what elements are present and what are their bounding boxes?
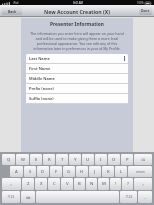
button[interactable]: Hide keyboard	[138, 191, 152, 203]
button[interactable]: G	[63, 166, 75, 177]
staticText: Prefix (none)	[29, 86, 54, 91]
button[interactable]: Q	[2, 154, 15, 165]
staticText: X	[40, 181, 43, 187]
staticText: P	[126, 157, 129, 163]
staticText: A	[15, 169, 18, 175]
button[interactable]: Prefix (none)	[26, 84, 128, 94]
button[interactable]: D	[37, 166, 49, 177]
button[interactable]: U	[82, 154, 94, 165]
button[interactable]: O	[108, 154, 120, 165]
staticText: N	[90, 181, 94, 187]
staticText: !	[115, 181, 117, 187]
button[interactable]: M	[98, 178, 109, 190]
staticText: .?123	[125, 195, 133, 199]
staticText: C	[53, 181, 56, 187]
button[interactable]: Numbers right	[120, 191, 137, 203]
button[interactable]: N	[86, 178, 97, 190]
staticText: M	[102, 181, 106, 187]
staticText: 9:41 AM	[73, 1, 83, 5]
staticText: D	[41, 169, 45, 175]
button[interactable]: K	[102, 166, 114, 177]
staticText: Middle Name	[29, 76, 55, 81]
button[interactable]: Shift right	[134, 178, 152, 190]
button[interactable]: !	[110, 178, 121, 190]
staticText: First Name	[29, 66, 51, 71]
button[interactable]: H	[76, 166, 88, 177]
staticText: ⇧	[142, 183, 145, 186]
button[interactable]: Delete	[134, 154, 152, 165]
staticText: New Account Creation (X)	[44, 8, 111, 15]
staticText: H	[80, 169, 84, 175]
staticText: U	[86, 157, 90, 163]
button[interactable]: L	[115, 166, 127, 177]
button[interactable]: E	[30, 154, 42, 165]
staticText: 100%	[137, 1, 144, 5]
button[interactable]: Keyboard	[21, 191, 35, 203]
staticText: V	[66, 181, 69, 187]
staticText: Presenter Information	[50, 21, 104, 28]
button[interactable]: First Name	[26, 64, 128, 74]
button[interactable]: X	[35, 178, 47, 190]
button[interactable]: ?	[122, 178, 133, 190]
button[interactable]: R	[43, 154, 55, 165]
button[interactable]: Z	[22, 178, 34, 190]
button[interactable]: Return	[128, 166, 152, 177]
button[interactable]: Shift	[2, 178, 21, 190]
staticText: O	[112, 157, 116, 163]
staticText: ⌨	[26, 196, 31, 199]
button[interactable]: Y	[69, 154, 81, 165]
staticText: F	[55, 169, 58, 175]
staticText: R	[48, 157, 51, 163]
staticText: The information you enter here will appe…	[27, 31, 127, 51]
staticText: Suffix (none)	[29, 96, 54, 101]
staticText: .?123	[7, 195, 15, 199]
staticText: ⌄	[144, 196, 147, 199]
staticText: Y	[74, 157, 77, 163]
button[interactable]: P	[121, 154, 133, 165]
button[interactable]: V	[61, 178, 73, 190]
staticText: I	[100, 157, 102, 163]
button[interactable]: Done	[139, 7, 152, 15]
button[interactable]: Last Name	[26, 54, 128, 64]
staticText: L	[120, 169, 123, 175]
button[interactable]: Space	[36, 191, 119, 203]
button[interactable]: W	[16, 154, 29, 165]
staticText: T	[61, 157, 64, 163]
staticText: Q	[7, 157, 11, 163]
button[interactable]: F	[50, 166, 62, 177]
button[interactable]: B	[74, 178, 85, 190]
button[interactable]: Numbers	[2, 191, 20, 203]
staticText: G	[67, 169, 71, 175]
button[interactable]: I	[95, 154, 107, 165]
staticText: Done	[141, 9, 150, 13]
staticText: E	[35, 157, 38, 163]
button[interactable]: A	[10, 166, 23, 177]
staticText: Z	[27, 181, 30, 187]
staticText: ⌫	[141, 158, 146, 161]
staticText: Last Name	[29, 56, 50, 61]
staticText: iPad	[13, 1, 19, 5]
staticText: J	[94, 169, 96, 175]
button[interactable]: J	[89, 166, 101, 177]
button[interactable]: C	[48, 178, 60, 190]
button[interactable]: Suffix (none)	[26, 94, 128, 104]
staticText: ⇧	[10, 183, 13, 186]
staticText: ?	[127, 181, 129, 187]
button[interactable]: Middle Name	[26, 74, 128, 84]
button[interactable]: Back	[2, 7, 22, 15]
staticText: Back	[8, 9, 17, 14]
staticText: W	[21, 157, 25, 163]
staticText: return	[136, 170, 145, 174]
staticText: K	[107, 169, 110, 175]
button[interactable]: T	[56, 154, 68, 165]
staticText: B	[78, 181, 81, 187]
staticText: S	[29, 169, 32, 175]
button[interactable]: S	[24, 166, 36, 177]
